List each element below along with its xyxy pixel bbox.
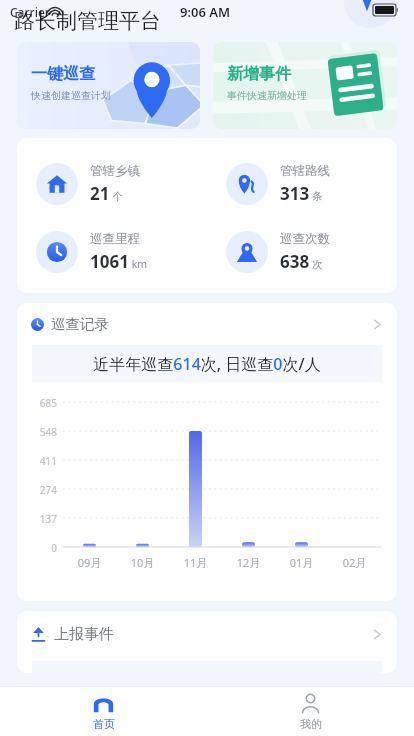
staticText: 上报事件	[54, 625, 114, 644]
staticText: 巡查次数	[280, 231, 330, 247]
staticText: 路长制管理平台	[14, 8, 161, 34]
staticText: 管辖路线	[280, 163, 330, 179]
staticText: 01月	[275, 555, 328, 570]
staticText: Carrier	[10, 4, 50, 20]
staticText: 巡查里程	[90, 231, 140, 247]
staticText: 一键巡查	[31, 64, 95, 84]
button[interactable]: 我的	[207, 687, 414, 736]
staticText: 274	[17, 483, 57, 497]
staticText: 1061 km	[90, 250, 148, 273]
staticText: 巡查记录	[51, 315, 109, 333]
button[interactable]: 巡查次数	[226, 218, 397, 286]
button[interactable]: 管辖路线	[226, 150, 397, 218]
staticText: 快速创建巡查计划	[31, 89, 111, 102]
staticText: 事件快速新增处理	[227, 89, 307, 102]
button[interactable]: 首页	[0, 687, 207, 736]
staticText: 管辖乡镇	[90, 163, 140, 179]
staticText: 11月	[169, 555, 222, 570]
staticText: 0	[17, 541, 57, 555]
staticText: 10月	[116, 555, 169, 570]
staticText: 638 次	[280, 250, 323, 273]
staticText: 9:06 AM	[180, 3, 231, 21]
button[interactable]: 巡查里程	[36, 218, 207, 286]
staticText: 首页	[93, 717, 115, 731]
staticText: 137	[17, 512, 57, 526]
staticText: 685	[17, 396, 57, 410]
staticText: 411	[17, 454, 57, 468]
button[interactable]: 巡查记录	[17, 303, 397, 345]
button[interactable]: 一键巡查	[17, 42, 200, 129]
staticText: 12月	[222, 555, 275, 570]
staticText: 02月	[328, 555, 381, 570]
button[interactable]: 管辖乡镇	[36, 150, 207, 218]
staticText: 近半年巡查614次, 日巡查0次/人	[93, 353, 321, 375]
staticText: 09月	[63, 555, 116, 570]
staticText: 21 个	[90, 182, 123, 205]
button[interactable]: 上报事件	[17, 611, 397, 657]
staticText: 新增事件	[227, 64, 291, 84]
button[interactable]: 新增事件	[213, 42, 397, 129]
staticText: 我的	[300, 717, 322, 731]
staticText: 548	[17, 425, 57, 439]
staticText: 313 条	[280, 182, 323, 205]
